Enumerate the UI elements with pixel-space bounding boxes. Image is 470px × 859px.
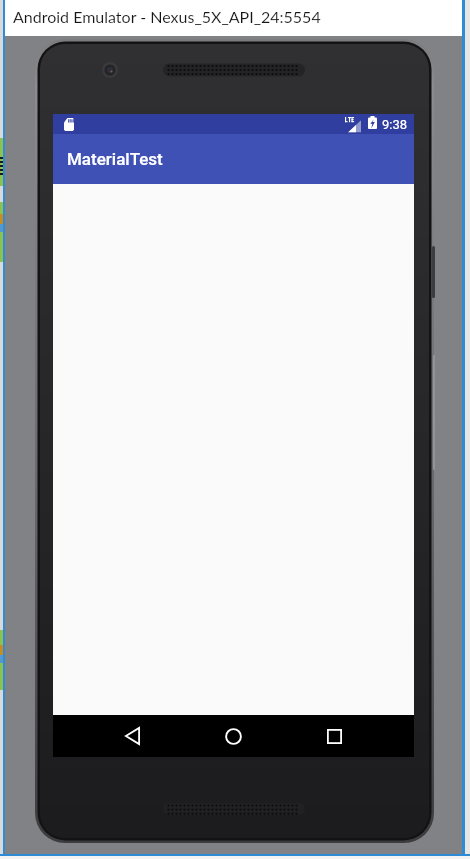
button[interactable]: MaterialTest	[53, 134, 414, 184]
staticText: Android Emulator - Nexus_5X_API_24:5554	[13, 7, 321, 26]
staticText: 9:38	[382, 117, 408, 132]
staticText: MaterialTest	[67, 149, 163, 169]
button[interactable]: Back	[108, 715, 156, 757]
button[interactable]: Home	[209, 715, 257, 757]
button[interactable]: Recent apps	[310, 715, 358, 757]
